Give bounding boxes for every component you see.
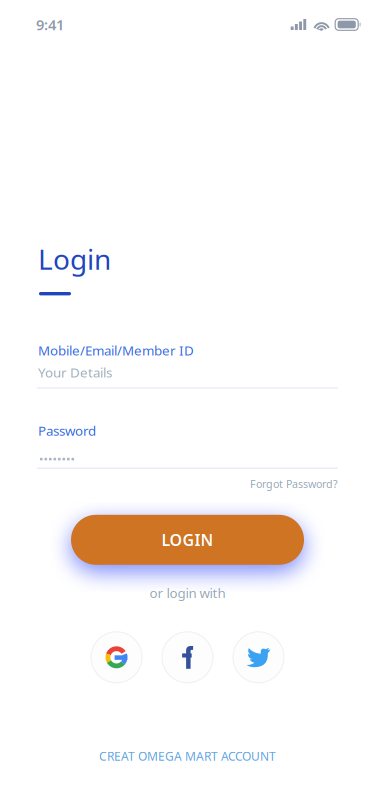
staticText: Your Details bbox=[38, 363, 112, 381]
staticText: Login bbox=[38, 240, 111, 278]
staticText: CREAT OMEGA MART ACCOUNT bbox=[99, 748, 276, 764]
staticText: Forgot Password? bbox=[250, 477, 338, 491]
staticText: Mobile/Email/Member ID bbox=[38, 341, 194, 359]
button[interactable]: Sign in with Twitter bbox=[233, 632, 284, 683]
button[interactable]: Forgot Password? bbox=[0, 469, 375, 491]
button[interactable]: LOGIN bbox=[71, 515, 304, 565]
button[interactable]: CREAT OMEGA MART ACCOUNT bbox=[0, 749, 375, 763]
staticText: 9:41 bbox=[36, 15, 64, 34]
button[interactable]: Sign in with Facebook bbox=[162, 632, 213, 683]
button[interactable]: Sign in with Google bbox=[91, 632, 142, 683]
staticText: LOGIN bbox=[161, 529, 213, 550]
staticText: Password bbox=[38, 422, 96, 439]
staticText: or login with bbox=[149, 584, 225, 602]
